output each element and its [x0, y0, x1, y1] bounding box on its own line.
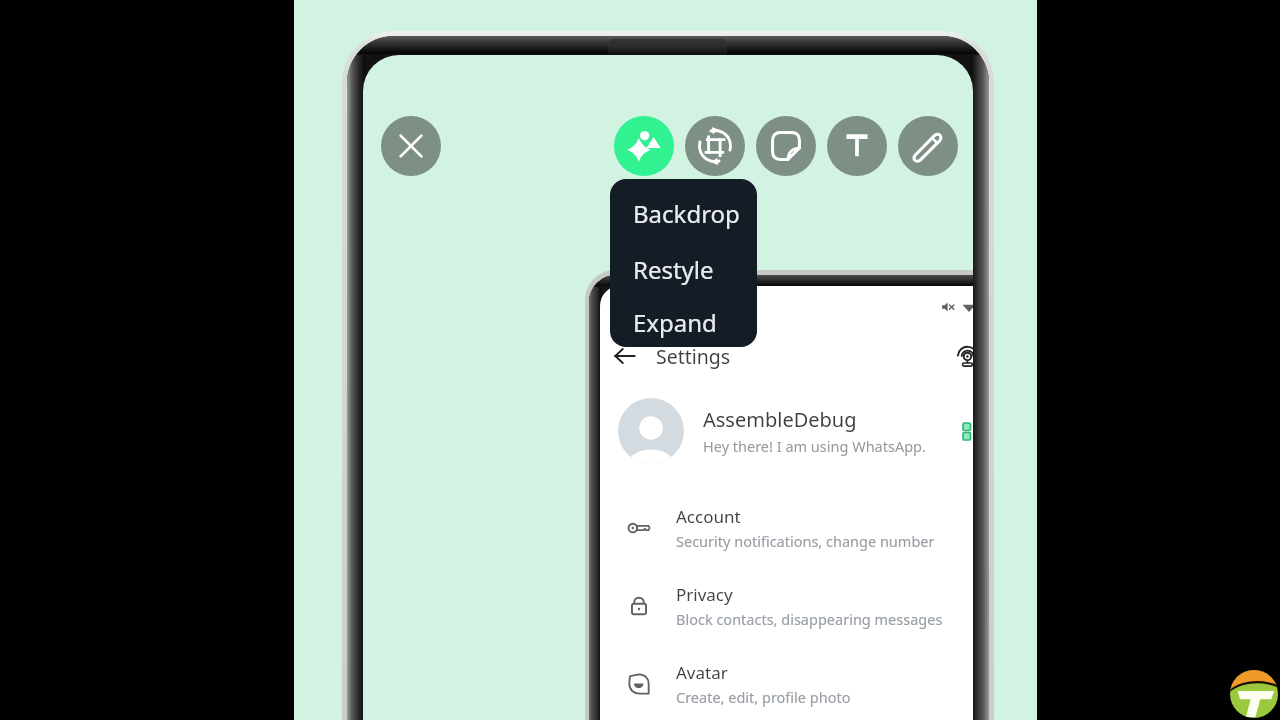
button[interactable]: Sticker — [756, 116, 816, 176]
button[interactable]: Account — [600, 489, 973, 567]
button[interactable]: Linked devices — [955, 344, 973, 368]
staticText: Backdrop — [633, 197, 740, 230]
staticText: Privacy — [676, 583, 733, 606]
button[interactable]: Expand — [610, 297, 757, 347]
staticText: Expand — [633, 306, 717, 339]
button[interactable]: Privacy — [600, 567, 973, 645]
button[interactable]: Back — [611, 342, 639, 370]
staticText: Restyle — [633, 253, 714, 286]
staticText: Avatar — [676, 661, 728, 684]
button[interactable]: Avatar — [600, 645, 973, 720]
staticText: Security notifications, change number — [676, 531, 935, 551]
button[interactable]: Restyle — [610, 241, 757, 297]
button[interactable]: Backdrop — [610, 185, 757, 241]
staticText: Account — [676, 505, 741, 528]
button[interactable]: Draw — [898, 116, 958, 176]
staticText: AssembleDebug — [703, 406, 857, 433]
button[interactable]: Add text — [827, 116, 887, 176]
staticText: Block contacts, disappearing messages — [676, 609, 943, 629]
staticText: Hey there! I am using WhatsApp. — [703, 436, 926, 456]
button[interactable]: AssembleDebug — [600, 398, 973, 464]
staticText: Settings — [656, 343, 731, 370]
button[interactable]: Close — [381, 116, 441, 176]
staticText: Create, edit, profile photo — [676, 687, 851, 707]
button[interactable]: Crop and rotate — [685, 116, 745, 176]
button[interactable]: QR code — [963, 423, 973, 440]
button[interactable]: AI edit — [614, 116, 674, 176]
